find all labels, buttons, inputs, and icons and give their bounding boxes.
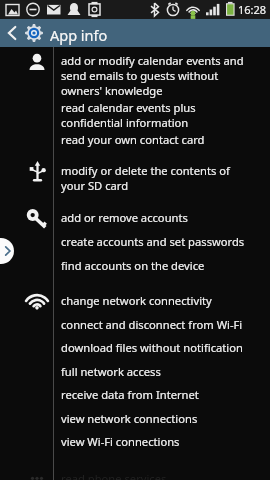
button[interactable]: Open edge panel [0,238,14,264]
button[interactable]: connect and disconnect from Wi-Fi [61,317,243,332]
button[interactable]: create accounts and set passwords [61,234,245,249]
button[interactable]: send emails to guests without [61,68,219,83]
button[interactable]: owners' knowledge [61,83,163,98]
button[interactable]: confidential information [61,115,189,130]
button[interactable]: view network connections [61,411,198,426]
button[interactable]: read your own contact card [61,132,205,147]
button[interactable]: Network permissions [0,287,270,459]
staticText: App info [50,25,108,45]
button[interactable]: find accounts on the device [61,258,205,273]
button[interactable]: Back [0,19,22,47]
button[interactable]: receive data from Internet [61,387,199,402]
button[interactable]: download files without notification [61,340,243,355]
button[interactable]: add or remove accounts [61,210,188,225]
button[interactable]: Calendar and contacts permissions [0,47,270,151]
button[interactable]: add or modify calendar events and [61,53,244,68]
button[interactable]: Accounts permissions [0,205,270,283]
button[interactable]: view Wi-Fi connections [61,434,180,449]
button[interactable]: full network access [61,364,161,379]
button[interactable]: modify or delete the contents of [61,163,230,178]
button[interactable]: read calendar events plus [61,100,196,115]
button[interactable]: Storage permissions [0,157,270,199]
staticText: 16:28 [238,2,267,17]
button[interactable]: change network connectivity [61,293,212,308]
button[interactable]: your SD card [61,178,129,193]
button[interactable]: read phone services [61,471,167,480]
